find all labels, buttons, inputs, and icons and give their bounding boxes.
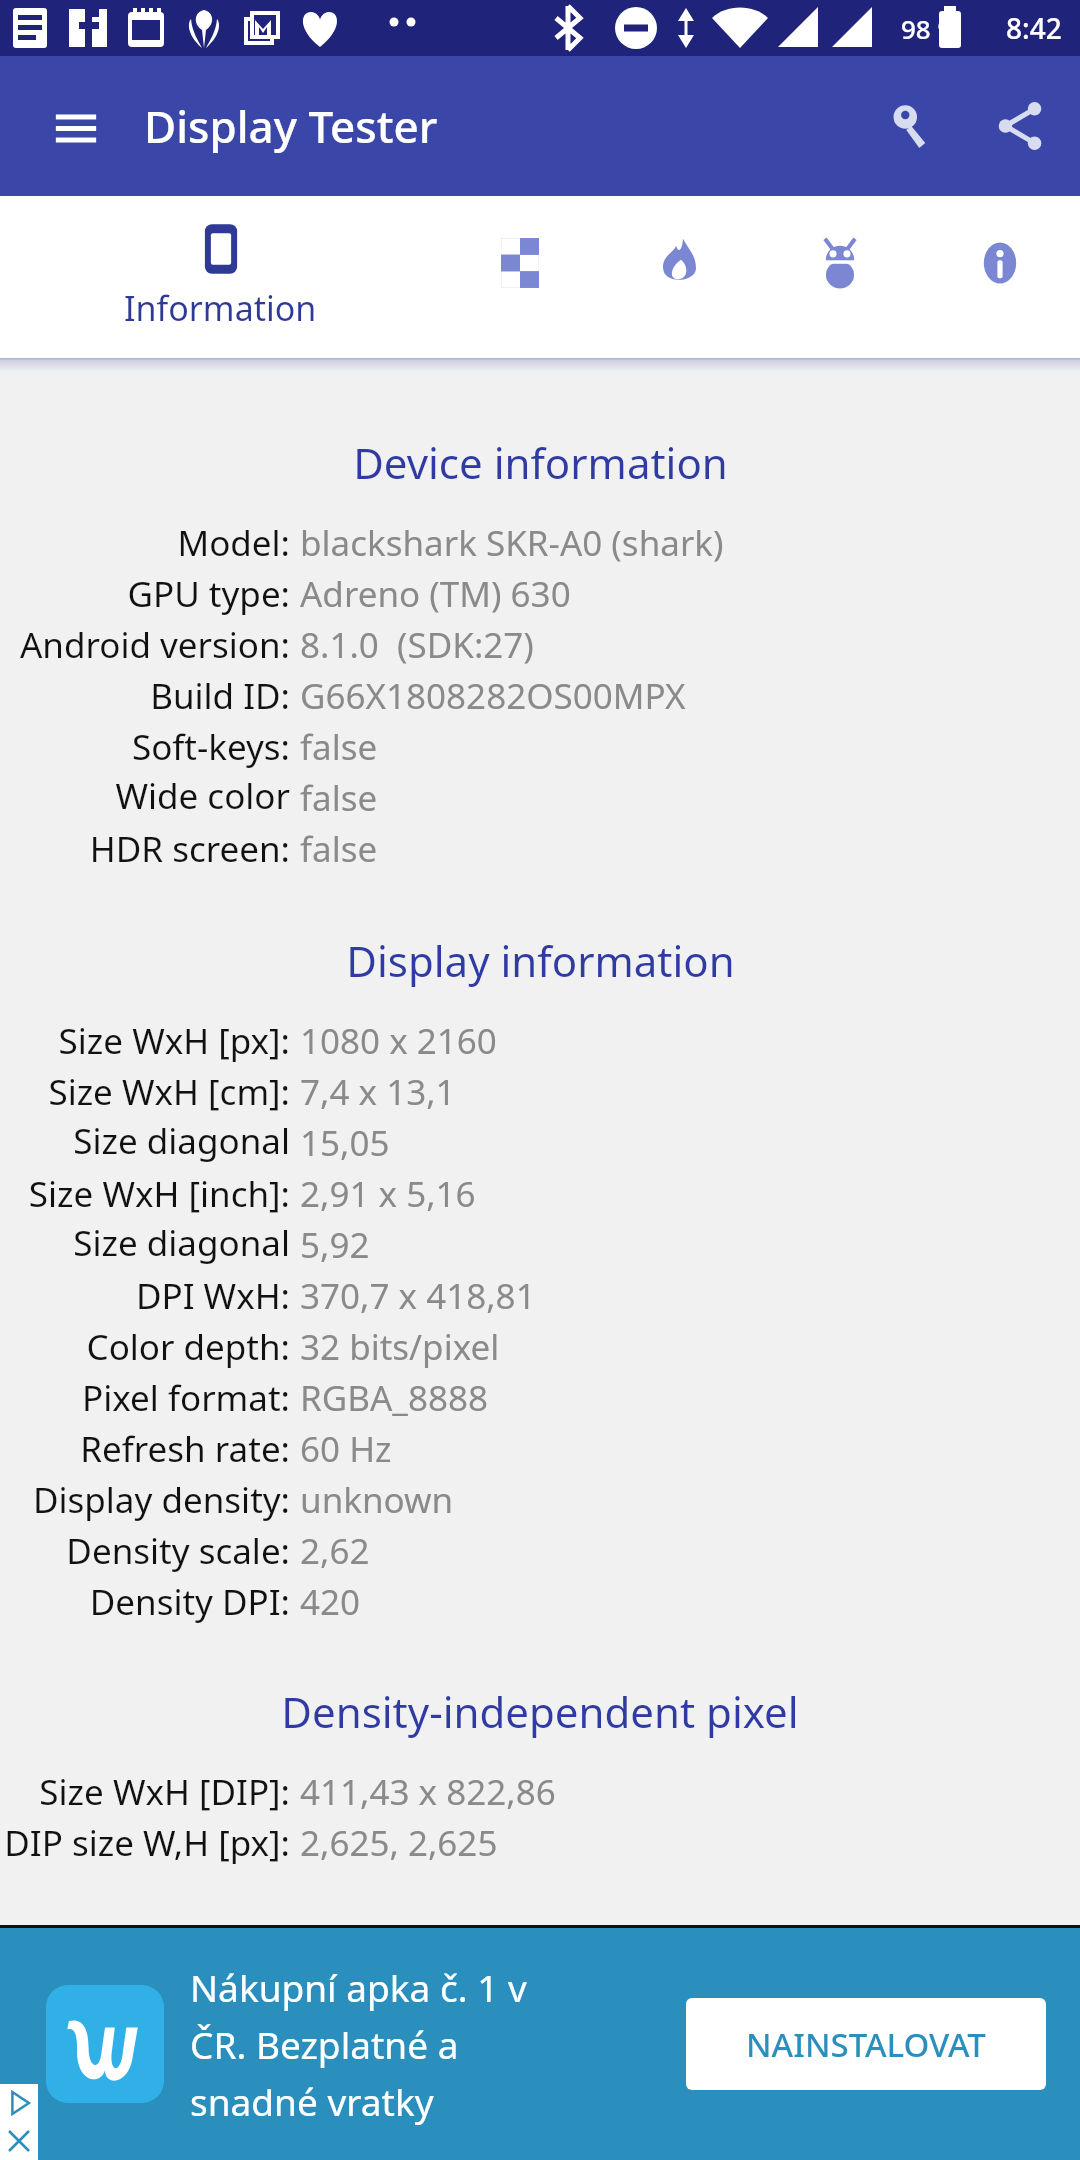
staticText: Density-independent pixel: [281, 1683, 799, 1740]
staticText: Wide color gamut:: [0, 772, 290, 823]
staticText: Display information: [346, 932, 735, 989]
staticText: NAINSTALOVAT: [746, 2022, 986, 2067]
button[interactable]: Nákupní apka č. 1 v ČR. Bezplatné a snad…: [0, 1928, 1080, 2160]
staticText: Pixel format:: [82, 1374, 290, 1422]
staticText: Size WxH [cm]:: [48, 1068, 290, 1116]
staticText: false: [300, 774, 378, 822]
staticText: Size diagonal [inch]:: [0, 1219, 290, 1270]
staticText: 370,7 x 418,81: [300, 1272, 536, 1320]
staticText: 7,4 x 13,1: [300, 1068, 456, 1116]
button[interactable]: Ad info: [0, 2084, 38, 2122]
staticText: Density scale:: [66, 1527, 290, 1575]
staticText: unknown: [300, 1476, 454, 1524]
staticText: Adreno (TM) 630: [300, 570, 571, 618]
staticText: Size diagonal [cm]:: [0, 1117, 290, 1168]
staticText: blackshark SKR-A0 (shark): [300, 519, 724, 567]
button[interactable]: Unlock pro features: [856, 70, 968, 182]
button[interactable]: Information: [0, 196, 440, 358]
staticText: Build ID:: [150, 672, 290, 720]
staticText: Android version:: [19, 621, 290, 669]
button[interactable]: Close ad: [0, 2122, 38, 2160]
button[interactable]: Screen test patterns: [440, 196, 600, 358]
staticText: 2,91 x 5,16: [300, 1170, 476, 1218]
staticText: 1080 x 2160: [300, 1017, 497, 1065]
staticText: 5,92: [300, 1221, 370, 1269]
staticText: 2,62: [300, 1527, 370, 1575]
staticText: Size WxH [px]:: [58, 1017, 290, 1065]
button[interactable]: About: [920, 196, 1080, 358]
staticText: Device information: [353, 434, 728, 491]
staticText: DIP size W,H [px]:: [4, 1819, 290, 1867]
staticText: 8.1.0 (SDK:27): [300, 621, 534, 669]
staticText: false: [300, 825, 378, 873]
staticText: 15,05: [300, 1119, 390, 1167]
staticText: 411,43 x 822,86: [300, 1768, 556, 1816]
button[interactable]: Bug report: [760, 196, 920, 358]
staticText: Size WxH [DIP]:: [39, 1768, 290, 1816]
staticText: 2,625, 2,625: [300, 1819, 498, 1867]
staticText: Display Tester: [144, 96, 438, 156]
staticText: RGBA_8888: [300, 1374, 488, 1422]
staticText: Size WxH [inch]:: [28, 1170, 290, 1218]
staticText: 60 Hz: [300, 1425, 392, 1473]
staticText: Color depth:: [86, 1323, 290, 1371]
staticText: 8:42: [1006, 9, 1062, 47]
staticText: Density DPI:: [89, 1578, 290, 1626]
staticText: false: [300, 723, 378, 771]
staticText: Nákupní apka č. 1 v ČR. Bezplatné a snad…: [190, 1962, 530, 2127]
staticText: 420: [300, 1578, 361, 1626]
staticText: Model:: [177, 519, 290, 567]
button[interactable]: Share: [968, 70, 1072, 182]
staticText: GPU type:: [127, 570, 290, 618]
staticText: 98 %: [901, 11, 960, 46]
staticText: HDR screen:: [89, 825, 290, 873]
staticText: Display density:: [32, 1476, 290, 1524]
staticText: G66X1808282OS00MPX: [300, 672, 686, 720]
staticText: DPI WxH:: [135, 1272, 290, 1320]
staticText: Information: [124, 285, 317, 331]
button[interactable]: Burn-in test: [600, 196, 760, 358]
staticText: 32 bits/pixel: [300, 1323, 500, 1371]
staticText: Soft-keys:: [131, 723, 290, 771]
staticText: Refresh rate:: [80, 1425, 290, 1473]
button[interactable]: NAINSTALOVAT: [686, 1998, 1046, 2090]
button[interactable]: Open navigation drawer: [28, 78, 124, 174]
